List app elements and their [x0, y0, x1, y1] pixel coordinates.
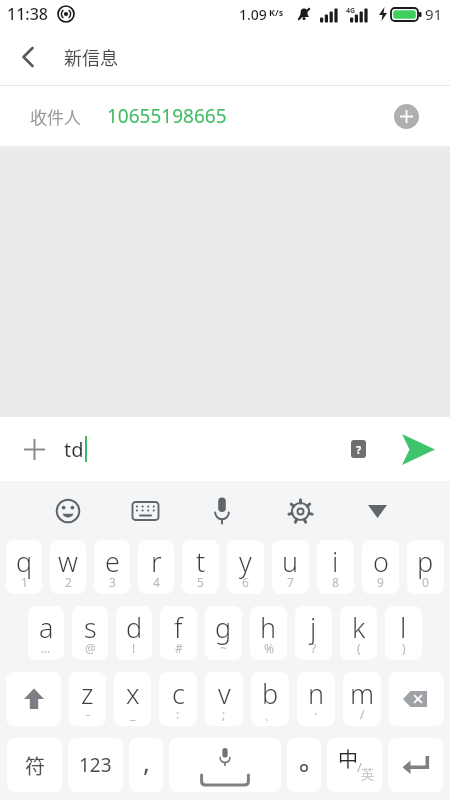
button[interactable]: v: [205, 672, 243, 726]
button[interactable]: [22, 437, 46, 461]
staticText: k: [352, 609, 366, 646]
staticText: ,: [143, 744, 150, 779]
staticText: e: [105, 543, 120, 580]
staticText: 4: [153, 574, 160, 590]
button[interactable]: z: [69, 672, 106, 726]
staticText: b: [262, 675, 279, 712]
staticText: 0: [422, 574, 429, 590]
staticText: f: [174, 609, 183, 646]
button[interactable]: u: [272, 540, 309, 594]
button[interactable]: [169, 738, 281, 792]
button[interactable]: 中: [327, 738, 382, 792]
staticText: 新信息: [64, 44, 118, 70]
staticText: :: [176, 706, 180, 722]
staticText: q: [16, 543, 33, 580]
staticText: 1.09: [239, 5, 267, 24]
staticText: 收件人: [30, 104, 81, 129]
button[interactable]: o: [362, 540, 399, 594]
button[interactable]: a: [28, 606, 64, 660]
staticText: 8: [332, 574, 339, 590]
button[interactable]: y: [227, 540, 264, 594]
staticText: 英: [361, 764, 375, 783]
button[interactable]: [125, 491, 165, 531]
button[interactable]: n: [297, 672, 335, 726]
button[interactable]: h: [250, 606, 287, 660]
button[interactable]: [389, 672, 444, 726]
staticText: 中: [338, 744, 358, 773]
button[interactable]: [6, 672, 61, 726]
staticText: o: [373, 543, 389, 580]
staticText: m: [350, 675, 375, 712]
button[interactable]: c: [159, 672, 197, 726]
staticText: t: [196, 543, 206, 580]
button[interactable]: t: [182, 540, 219, 594]
staticText: %: [264, 640, 274, 656]
button[interactable]: 收件人: [0, 86, 450, 146]
staticText: !: [132, 640, 136, 656]
button[interactable]: g: [205, 606, 242, 660]
button[interactable]: [202, 491, 242, 531]
button[interactable]: p: [407, 540, 444, 594]
staticText: i: [332, 543, 339, 580]
button[interactable]: [357, 491, 397, 531]
button[interactable]: [388, 738, 443, 792]
button[interactable]: l: [385, 606, 422, 660]
staticText: 、: [264, 707, 276, 722]
staticText: z: [81, 675, 94, 712]
staticText: g: [215, 609, 232, 646]
button[interactable]: [400, 431, 436, 467]
staticText: -: [86, 706, 90, 722]
button[interactable]: [0, 29, 56, 85]
staticText: ~: [220, 640, 227, 656]
staticText: 2: [65, 574, 72, 590]
staticText: j: [310, 609, 317, 646]
staticText: …: [41, 640, 51, 656]
button[interactable]: q: [6, 540, 42, 594]
staticText: 5: [197, 574, 204, 590]
button[interactable]: s: [72, 606, 108, 660]
staticText: w: [58, 543, 78, 580]
button[interactable]: x: [114, 672, 151, 726]
staticText: ·: [314, 706, 318, 722]
button[interactable]: w: [50, 540, 86, 594]
button[interactable]: ?: [351, 440, 366, 458]
button[interactable]: f: [160, 606, 197, 660]
button[interactable]: [394, 104, 419, 129]
button[interactable]: m: [343, 672, 381, 726]
button[interactable]: d: [116, 606, 152, 660]
staticText: p: [417, 543, 434, 580]
button[interactable]: [287, 738, 321, 792]
button[interactable]: [48, 491, 88, 531]
button[interactable]: i: [317, 540, 354, 594]
staticText: y: [239, 543, 252, 580]
staticText: (: [357, 640, 361, 656]
button[interactable]: e: [94, 540, 130, 594]
staticText: /: [357, 758, 362, 776]
button[interactable]: [280, 491, 320, 531]
staticText: _: [130, 706, 136, 722]
staticText: td: [64, 436, 84, 463]
button[interactable]: r: [138, 540, 174, 594]
staticText: l: [400, 609, 407, 646]
staticText: 10655198665: [107, 103, 227, 129]
button[interactable]: ,: [129, 738, 163, 792]
staticText: 7: [287, 574, 294, 590]
staticText: h: [260, 609, 277, 646]
button[interactable]: k: [340, 606, 377, 660]
staticText: 4G: [346, 6, 356, 16]
staticText: 符: [25, 751, 45, 780]
staticText: v: [218, 675, 231, 712]
button[interactable]: 符: [7, 738, 62, 792]
button[interactable]: 123: [68, 738, 123, 792]
button[interactable]: j: [295, 606, 332, 660]
staticText: ;: [222, 706, 226, 722]
button[interactable]: b: [251, 672, 289, 726]
staticText: @: [85, 640, 96, 656]
staticText: 3: [109, 574, 116, 590]
staticText: 123: [79, 752, 112, 778]
staticText: n: [308, 675, 325, 712]
staticText: ?: [356, 442, 362, 457]
staticText: a: [39, 609, 54, 646]
staticText: 11:38: [7, 3, 48, 25]
staticText: 9: [377, 574, 384, 590]
